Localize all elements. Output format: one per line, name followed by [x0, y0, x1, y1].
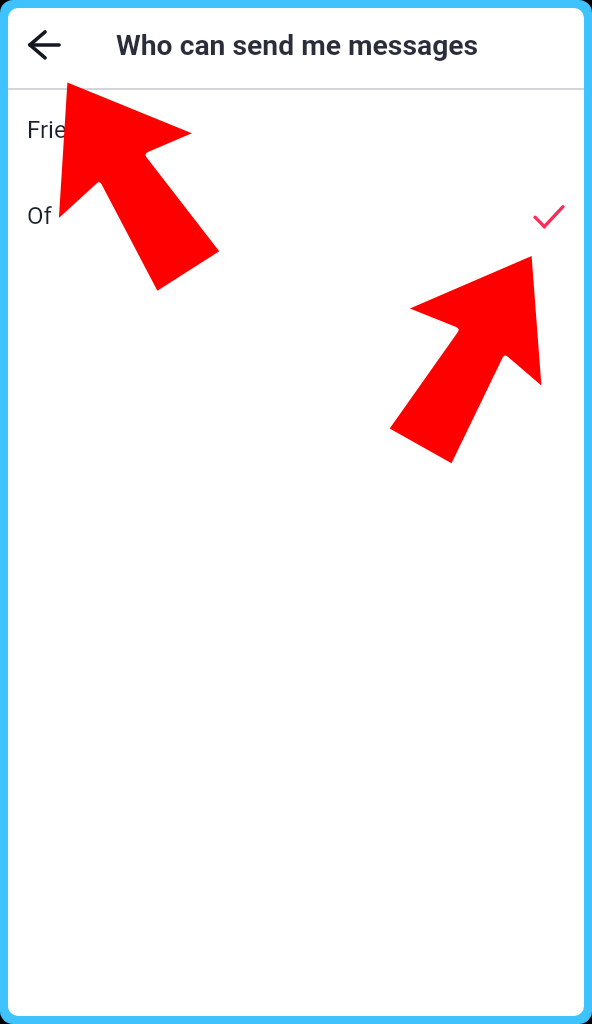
- button[interactable]: Back: [21, 22, 73, 74]
- button[interactable]: Of: [8, 175, 584, 260]
- button[interactable]: Friends: [8, 90, 584, 175]
- staticText: Friends: [27, 116, 106, 144]
- staticText: Of: [27, 202, 52, 230]
- staticText: Who can send me messages: [116, 29, 479, 62]
